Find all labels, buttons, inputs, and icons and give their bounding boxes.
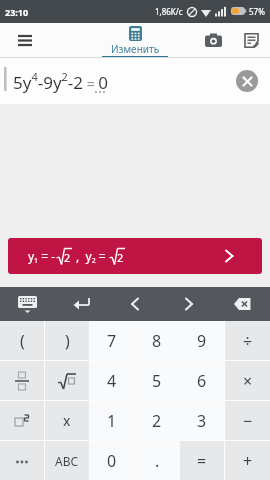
staticText: ( [20,330,25,352]
button[interactable] [216,287,270,321]
staticText: 4 [107,370,117,392]
button[interactable] [0,401,44,440]
staticText: = [197,450,207,472]
staticText: × [243,370,253,392]
staticText: . [155,450,160,472]
button[interactable]: ABC [45,441,89,480]
button[interactable] [236,25,266,55]
staticText: 1 [107,410,117,432]
staticText: 2 [117,250,124,265]
staticText: ÷ [243,330,253,352]
button[interactable]: ( [0,321,44,360]
staticText: ABC [55,453,79,469]
staticText: 2 [64,250,71,265]
staticText: 8 [152,330,162,352]
staticText: 5 [152,370,162,392]
staticText: 57% [249,6,265,17]
button[interactable]: 7 [90,321,134,360]
staticText: − [243,410,253,432]
staticText: y1 = - [28,248,56,265]
button[interactable]: = [180,441,224,480]
button[interactable]: 6 [180,361,224,400]
button[interactable] [162,287,216,321]
staticText: ) [65,330,70,352]
button[interactable]: x [45,401,89,440]
button[interactable]: y1 = - [8,238,262,274]
button[interactable] [54,287,108,321]
button[interactable]: + [225,441,270,480]
button[interactable] [0,441,44,480]
button[interactable] [0,287,54,321]
button[interactable]: 1 [90,401,134,440]
staticText: 0 [107,450,117,472]
staticText: x [63,411,71,430]
staticText: 23:10 [5,6,29,18]
staticText: 1,86K/c [155,6,183,17]
staticText: , y2 = [73,248,109,265]
button[interactable]: 9 [180,321,224,360]
button[interactable]: 2 [135,401,179,440]
staticText: Изменить [111,42,160,56]
button[interactable]: − [225,401,270,440]
button[interactable] [45,361,89,400]
button[interactable]: 5 [135,361,179,400]
button[interactable] [10,25,40,55]
button[interactable]: Изменить [102,23,168,57]
staticText: 3 [197,410,207,432]
button[interactable]: ÷ [225,321,270,360]
staticText: 9 [197,330,207,352]
button[interactable] [0,361,44,400]
button[interactable]: 0 [90,441,134,480]
button[interactable] [108,287,162,321]
staticText: 2 [152,410,162,432]
button[interactable]: 4 [90,361,134,400]
staticText: + [243,450,253,472]
button[interactable] [198,25,228,55]
button[interactable]: . [135,441,179,480]
button[interactable]: × [225,361,270,400]
staticText: 7 [107,330,117,352]
staticText: 6 [197,370,207,392]
button[interactable] [236,70,258,92]
button[interactable]: ) [45,321,89,360]
button[interactable]: 8 [135,321,179,360]
staticText: 5y4-9y2-2 = 0 [13,69,109,94]
button[interactable]: 3 [180,401,224,440]
